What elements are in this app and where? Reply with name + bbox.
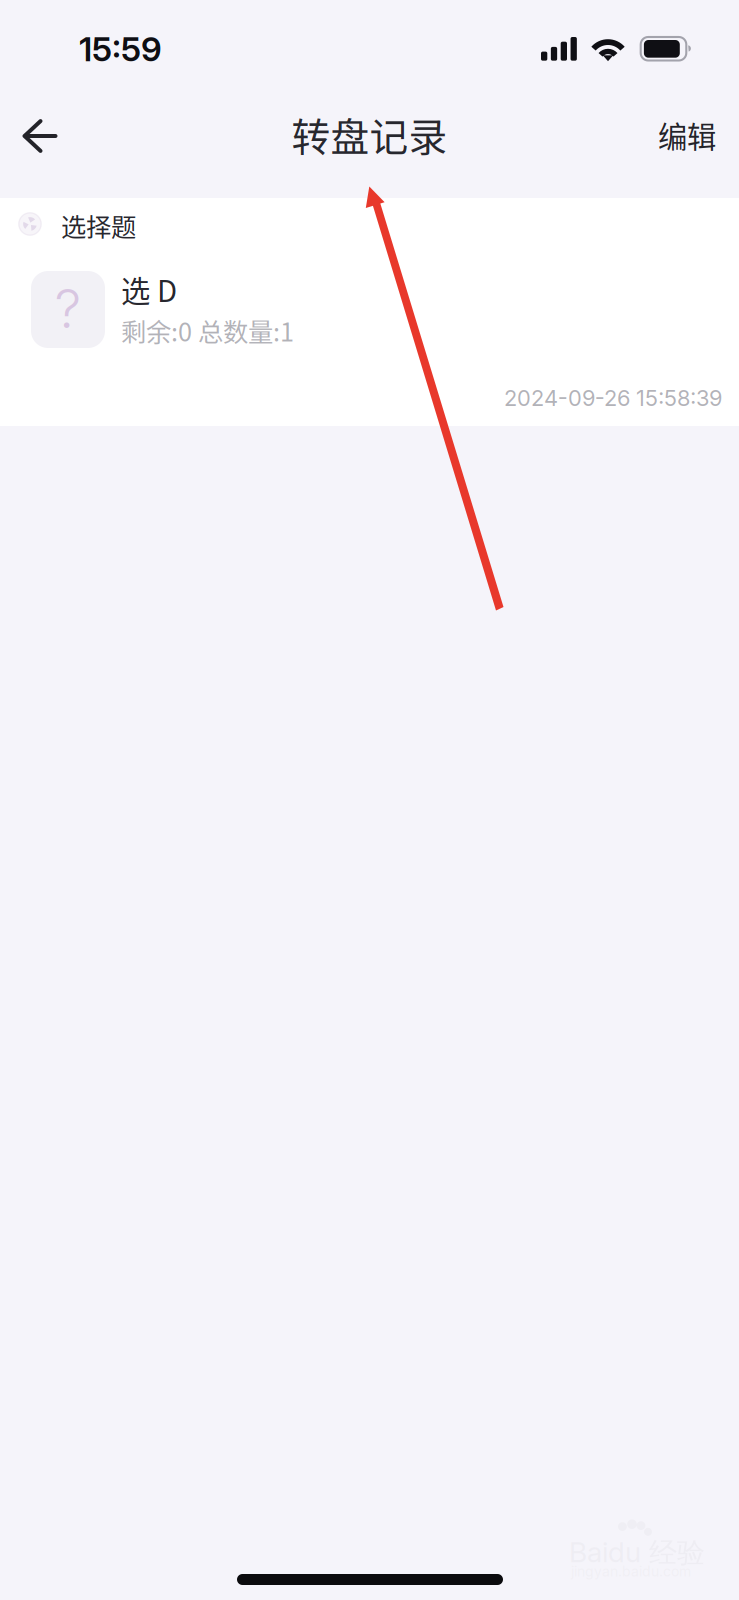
- staticText: 选择题: [61, 207, 136, 244]
- staticText: 转盘记录: [291, 106, 447, 162]
- staticText: 15:59: [79, 29, 162, 69]
- staticText: 剩余:0 总数量:1: [121, 312, 294, 349]
- staticText: 2024-09-26 15:58:39: [504, 385, 722, 411]
- button[interactable]: ?: [0, 254, 739, 426]
- button[interactable]: 编辑: [637, 98, 737, 172]
- staticText: 编辑: [658, 114, 716, 156]
- button[interactable]: Back: [3, 99, 77, 173]
- staticText: ?: [54, 276, 81, 341]
- staticText: 选 D: [121, 268, 177, 310]
